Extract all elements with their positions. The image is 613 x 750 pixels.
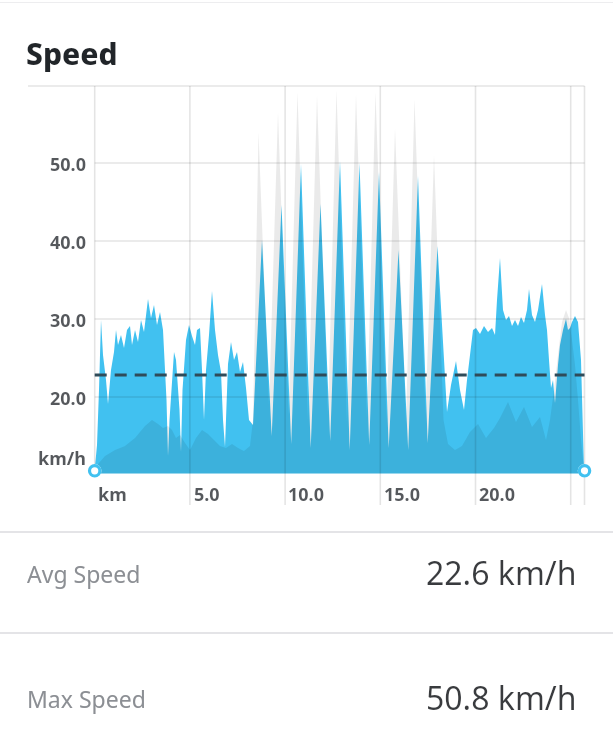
staticText: 20.0 <box>50 386 86 411</box>
staticText: km/h <box>38 446 86 471</box>
staticText: 30.0 <box>50 308 86 333</box>
staticText: 10.0 <box>288 482 324 507</box>
staticText: Max Speed <box>27 683 146 714</box>
button[interactable]: Max Speed <box>0 648 613 748</box>
staticText: Speed <box>26 33 118 74</box>
staticText: 5.0 <box>194 482 220 507</box>
staticText: 20.0 <box>479 482 515 507</box>
staticText: Avg Speed <box>27 558 141 589</box>
staticText: 50.8 km/h <box>426 676 577 720</box>
staticText: 15.0 <box>384 482 420 507</box>
staticText: 22.6 km/h <box>426 551 577 595</box>
button[interactable]: Avg Speed <box>0 523 613 623</box>
staticText: 50.0 <box>50 152 86 177</box>
staticText: km <box>98 482 127 507</box>
staticText: 40.0 <box>50 230 86 255</box>
